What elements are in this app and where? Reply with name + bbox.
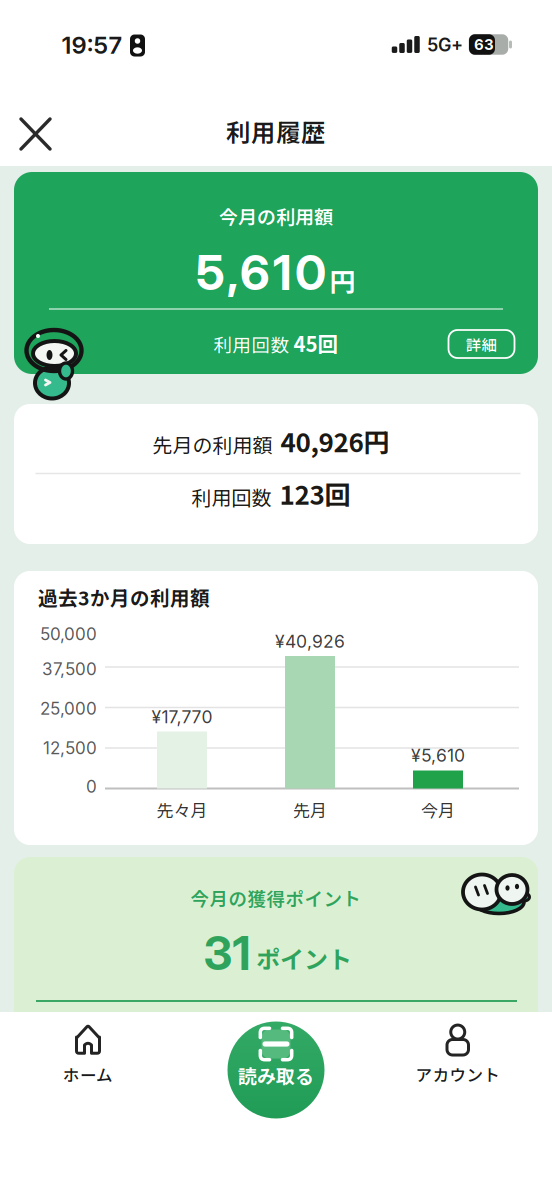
staticText: 今月の獲得ポイント	[190, 885, 361, 911]
staticText: 今月	[421, 797, 455, 822]
staticText: 先々月	[156, 797, 207, 822]
button[interactable]: 閉じる	[19, 117, 52, 151]
staticText: ¥40,926	[275, 631, 345, 652]
staticText: ¥17,770	[151, 706, 212, 728]
staticText: 利用履歴	[226, 113, 326, 149]
button[interactable]: ホーム	[33, 1022, 143, 1088]
staticText: 円	[329, 262, 355, 299]
staticText: 0	[86, 776, 97, 797]
staticText: 5,610	[196, 243, 326, 302]
button[interactable]: 読み取る	[227, 1021, 324, 1118]
staticText: 過去3か月の利用額	[38, 583, 210, 611]
staticText: 25,000	[40, 698, 97, 719]
staticText: 19:57	[61, 30, 122, 59]
staticText: 詳細	[465, 333, 497, 355]
staticText: 先月	[293, 797, 327, 822]
staticText: 12,500	[43, 738, 97, 758]
staticText: 利用回数 123回	[191, 475, 350, 512]
button[interactable]: 詳細	[448, 330, 514, 358]
staticText: 50,000	[40, 624, 97, 644]
staticText: 5G+	[427, 34, 463, 56]
staticText: 読み取る	[238, 1061, 314, 1089]
staticText: 31	[203, 925, 250, 981]
staticText: 63	[474, 35, 494, 53]
staticText: 先月の利用額 40,926円	[152, 423, 389, 459]
staticText: アカウント	[415, 1062, 500, 1086]
staticText: ¥5,610	[411, 745, 465, 766]
button[interactable]: アカウント	[398, 1022, 518, 1088]
staticText: 37,500	[42, 659, 97, 679]
staticText: 今月の利用額	[219, 202, 333, 230]
staticText: ポイント	[256, 941, 352, 975]
staticText: ホーム	[63, 1062, 113, 1086]
staticText: 利用回数 45回	[213, 328, 338, 357]
